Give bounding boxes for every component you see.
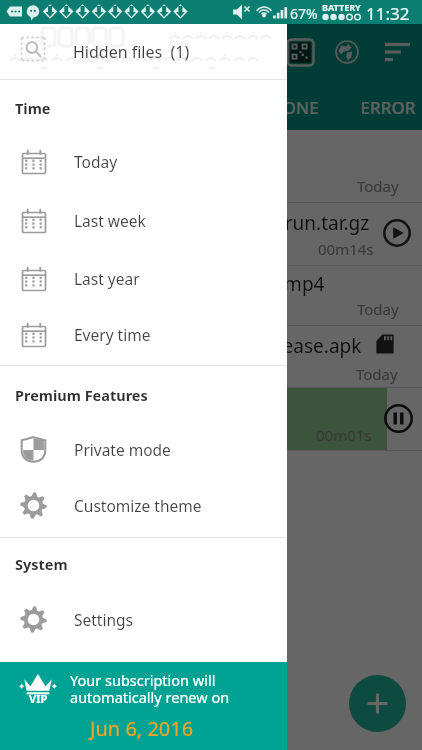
staticText: 67%	[290, 4, 318, 23]
button[interactable]: DONE	[248, 86, 341, 128]
staticText: Today	[356, 364, 398, 384]
button[interactable]: Every time	[0, 306, 287, 362]
staticText: chromium-nightly.p.run.tar.gz	[104, 210, 370, 236]
staticText: holiday_clip_2016.mp4	[123, 271, 325, 297]
button[interactable]: ERROR	[341, 86, 422, 128]
staticText: Premium Features	[15, 385, 148, 405]
staticText: 00m14s	[318, 239, 374, 259]
staticText: Every time	[74, 324, 151, 345]
button[interactable]: Hidden files	[0, 24, 287, 79]
button[interactable]: Last week	[0, 192, 287, 248]
staticText: 00m01s	[316, 425, 372, 445]
button[interactable]: Today	[0, 133, 287, 189]
button[interactable]: card	[364, 323, 406, 365]
staticText: Last year	[74, 268, 140, 289]
button[interactable]: Private mode	[0, 421, 287, 477]
button[interactable]: holiday_clip_2016.mp4	[0, 266, 422, 326]
staticText: Last week	[74, 210, 146, 231]
staticText: Customize theme	[74, 495, 202, 516]
button[interactable]: Sort	[373, 28, 421, 76]
staticText: VIP	[29, 691, 48, 706]
button[interactable]: Settings	[0, 591, 287, 647]
button[interactable]: Add download	[349, 675, 406, 732]
staticText: backup_photos_2016.zip	[57, 395, 276, 421]
staticText: 11:32	[366, 2, 410, 25]
staticText: ubuntu-16.04-desktop.iso	[49, 150, 278, 176]
button[interactable]: backup_photos_2016.zip	[0, 388, 422, 451]
button[interactable]: Last year	[0, 250, 287, 306]
staticText: ERROR	[360, 96, 416, 119]
button[interactable]: play	[376, 212, 418, 254]
staticText: System	[15, 554, 68, 574]
staticText: Today	[357, 299, 399, 319]
staticText: automatically renew on	[70, 687, 230, 707]
staticText: Time	[15, 98, 51, 118]
staticText: Private mode	[74, 439, 171, 460]
staticText: Today	[357, 176, 399, 196]
button[interactable]: Open browser	[323, 28, 371, 76]
button[interactable]: Subscription renewal	[0, 662, 287, 750]
staticText: Jun 6, 2016	[90, 715, 194, 742]
button[interactable]: downloader-v3-release.apk	[0, 326, 422, 388]
button[interactable]: Scan QR code	[276, 28, 324, 76]
button[interactable]: chromium-nightly.p.run.tar.gz	[0, 203, 422, 266]
staticText: Today	[74, 151, 118, 172]
button[interactable]: pause	[377, 397, 419, 439]
staticText: Hidden files (1)	[73, 41, 190, 63]
staticText: Settings	[74, 609, 133, 630]
staticText: Your subscription will	[70, 670, 216, 690]
staticText: DONE	[270, 96, 319, 119]
staticText: downloader-v3-release.apk	[120, 333, 362, 359]
button[interactable]: ubuntu-16.04-desktop.iso	[0, 130, 422, 203]
button[interactable]: Customize theme	[0, 477, 287, 533]
staticText: BATTERY	[322, 1, 361, 13]
